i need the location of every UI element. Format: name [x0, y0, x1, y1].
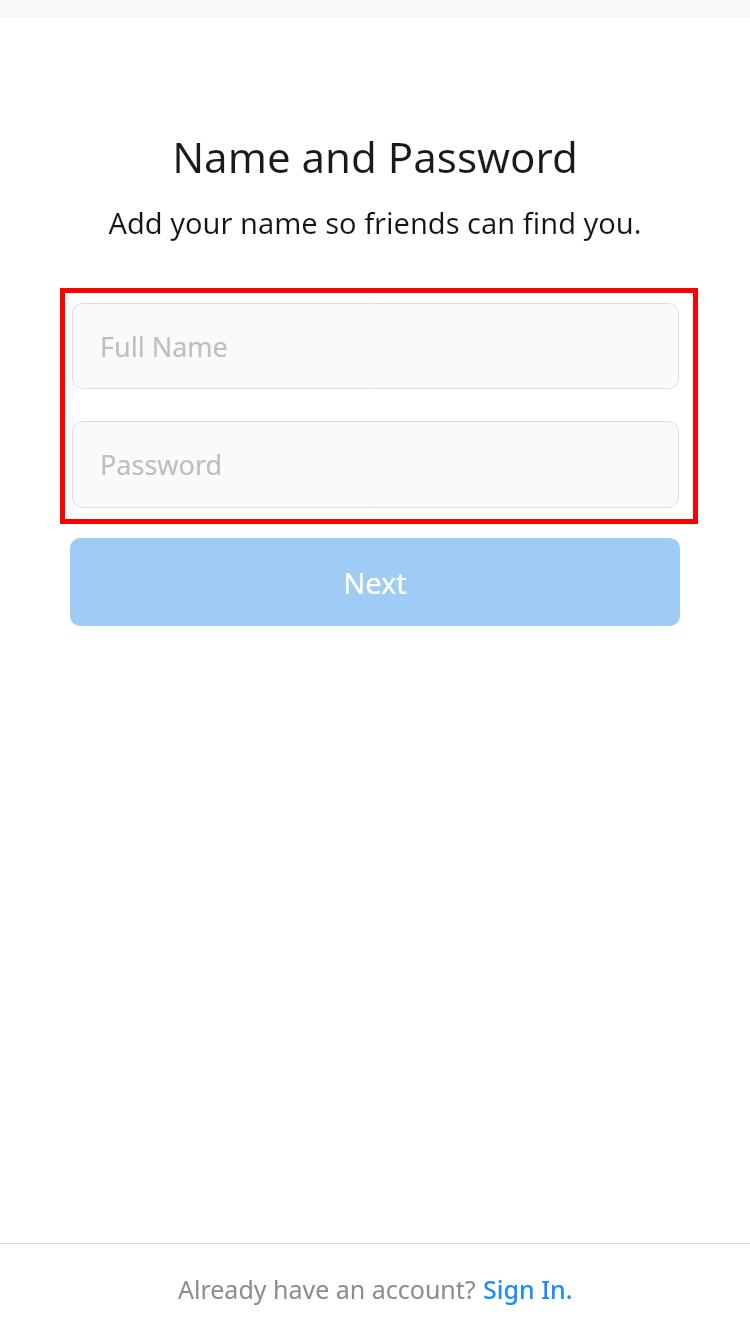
button[interactable]: Sign In. — [483, 1272, 573, 1306]
staticText: Full Name — [100, 328, 228, 365]
staticText: Add your name so friends can find you. — [0, 203, 750, 242]
staticText: Sign In. — [483, 1272, 573, 1306]
button[interactable]: Full Name — [72, 303, 679, 389]
button[interactable]: Next — [70, 538, 680, 626]
staticText: Name and Password — [0, 128, 750, 185]
staticText: Already have an account? — [178, 1272, 483, 1306]
button[interactable]: Password — [72, 421, 679, 508]
staticText: Password — [100, 446, 223, 483]
staticText: Next — [343, 563, 407, 602]
